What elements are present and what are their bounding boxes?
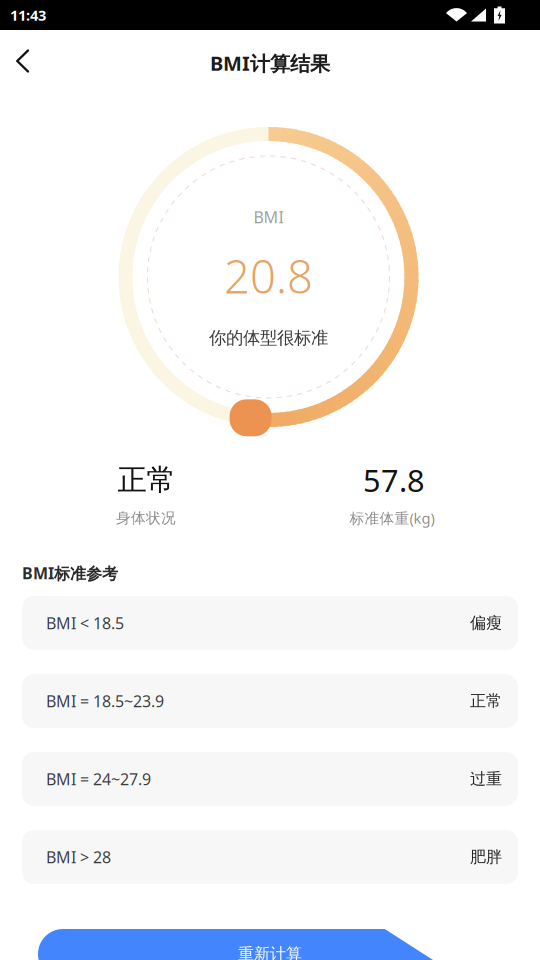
staticText: 正常 (470, 691, 502, 711)
staticText: 你的体型很标准 (209, 327, 328, 349)
button[interactable]: BMI = 18.5~23.9 (22, 674, 518, 728)
staticText: BMI < 18.5 (46, 612, 124, 634)
staticText: 肥胖 (470, 847, 502, 867)
staticText: 标准体重(kg) (349, 508, 434, 528)
staticText: BMI = 18.5~23.9 (46, 690, 164, 712)
staticText: BMI标准参考 (22, 562, 118, 584)
staticText: 57.8 (363, 460, 425, 500)
staticText: BMI计算结果 (210, 50, 330, 76)
staticText: 偏瘦 (470, 613, 502, 633)
button[interactable]: 重新计算 (38, 929, 502, 960)
button[interactable]: BMI > 28 (22, 830, 518, 884)
staticText: 重新计算 (238, 944, 302, 960)
button[interactable]: Back (0, 40, 46, 82)
button[interactable]: BMI < 18.5 (22, 596, 518, 650)
staticText: 正常 (117, 462, 175, 498)
staticText: 过重 (470, 769, 502, 789)
staticText: BMI > 28 (46, 846, 111, 868)
staticText: 11:43 (10, 5, 46, 25)
staticText: 20.8 (224, 246, 313, 306)
button[interactable]: BMI = 24~27.9 (22, 752, 518, 806)
staticText: 身体状况 (116, 509, 176, 527)
staticText: BMI = 24~27.9 (46, 768, 151, 790)
staticText: BMI (253, 206, 283, 228)
